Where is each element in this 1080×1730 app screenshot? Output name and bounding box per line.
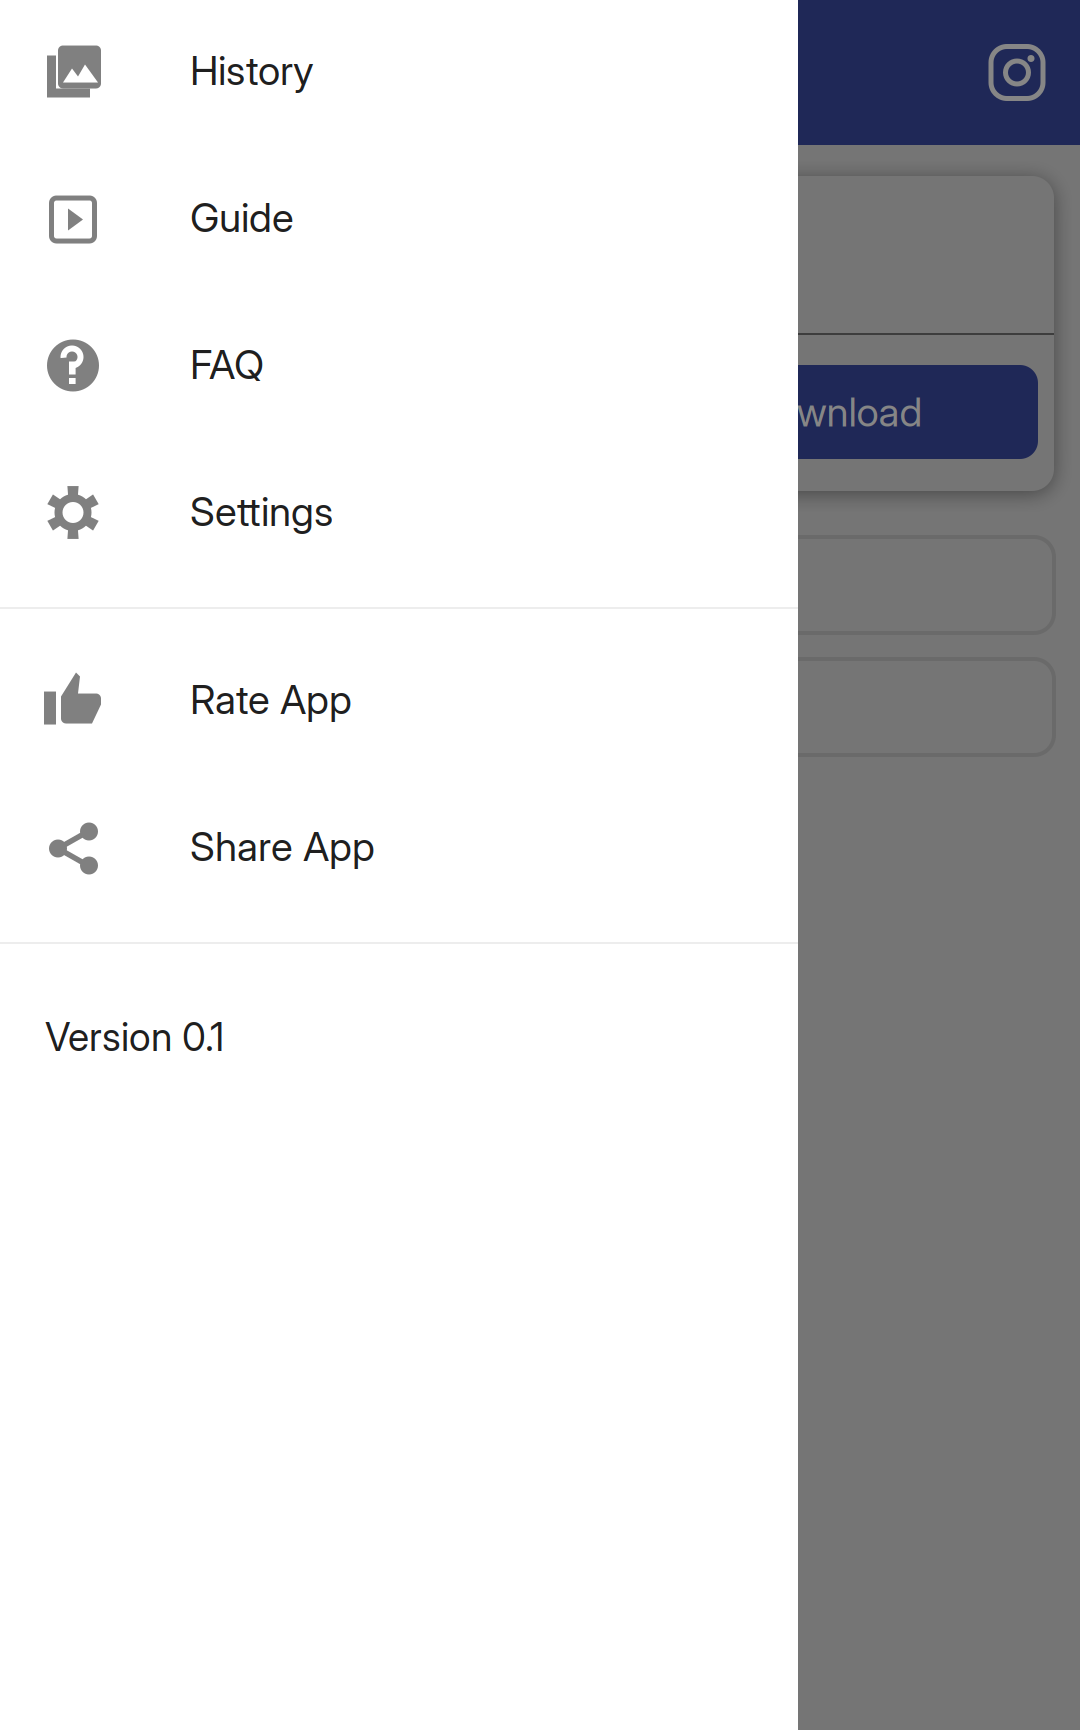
staticText: FAQ [190,340,264,389]
button[interactable]: FAQ [0,291,798,438]
button[interactable]: Open Instagram [989,44,1045,100]
staticText: Download [747,388,922,436]
staticText: Rate App [190,675,352,724]
staticText: History [190,46,314,95]
button[interactable]: Guide [0,144,798,291]
button[interactable]: Download [26,365,1054,459]
button[interactable]: Share App [0,773,798,920]
button[interactable]: Rate App [0,626,798,773]
button[interactable]: History [0,0,798,144]
button[interactable]: Settings [0,438,798,585]
staticText: Version 0.1 [45,1014,224,1060]
staticText: Settings [190,487,333,536]
staticText: Guide [190,193,294,242]
staticText: Share App [190,822,375,871]
